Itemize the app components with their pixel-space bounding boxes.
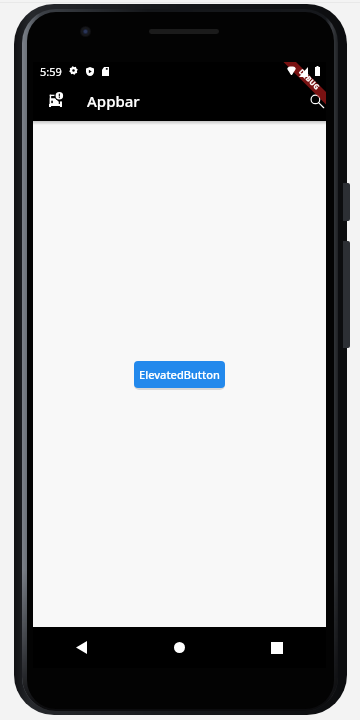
button[interactable]: Search	[300, 84, 334, 118]
staticText: DEBUG	[296, 67, 322, 93]
button[interactable]: Back	[33, 627, 130, 668]
button[interactable]: ElevatedButton	[134, 361, 225, 388]
staticText: ElevatedButton	[139, 367, 220, 382]
staticText: Appbar	[87, 91, 140, 111]
staticText: 5:59	[40, 64, 62, 79]
button[interactable]: Open navigation	[39, 82, 73, 117]
button[interactable]: Home	[130, 627, 228, 668]
button[interactable]: Recent apps	[228, 627, 326, 668]
